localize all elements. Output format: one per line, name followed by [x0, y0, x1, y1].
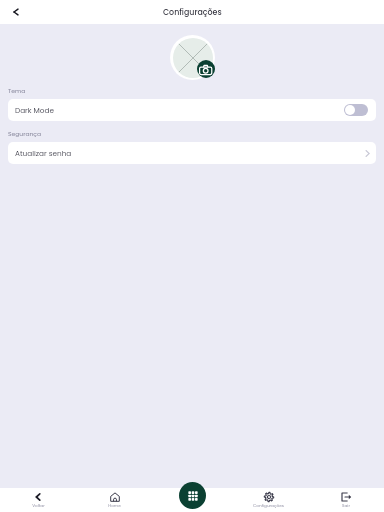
button[interactable]: Home	[76, 492, 153, 509]
button[interactable]: Configurações	[230, 492, 307, 509]
button[interactable]: Sair	[307, 492, 384, 509]
staticText: Sair	[342, 503, 350, 509]
button[interactable]: Foto do perfil	[170, 35, 215, 80]
staticText: Home	[108, 503, 121, 509]
button[interactable]: Voltar	[8, 4, 24, 20]
button[interactable]: Atualizar senha	[8, 142, 376, 164]
button[interactable]: Alterar foto	[197, 60, 215, 78]
staticText: Atualizar senha	[15, 148, 72, 158]
button[interactable]: Aplicativos	[179, 482, 206, 509]
button[interactable]: Voltar	[0, 492, 76, 509]
staticText: Configurações	[163, 7, 222, 18]
staticText: Tema	[8, 87, 26, 95]
staticText: Segurança	[8, 130, 41, 138]
staticText: Voltar	[32, 503, 45, 509]
button[interactable]: Dark Mode	[8, 99, 376, 121]
staticText: Configurações	[253, 503, 284, 509]
staticText: Dark Mode	[15, 105, 54, 115]
